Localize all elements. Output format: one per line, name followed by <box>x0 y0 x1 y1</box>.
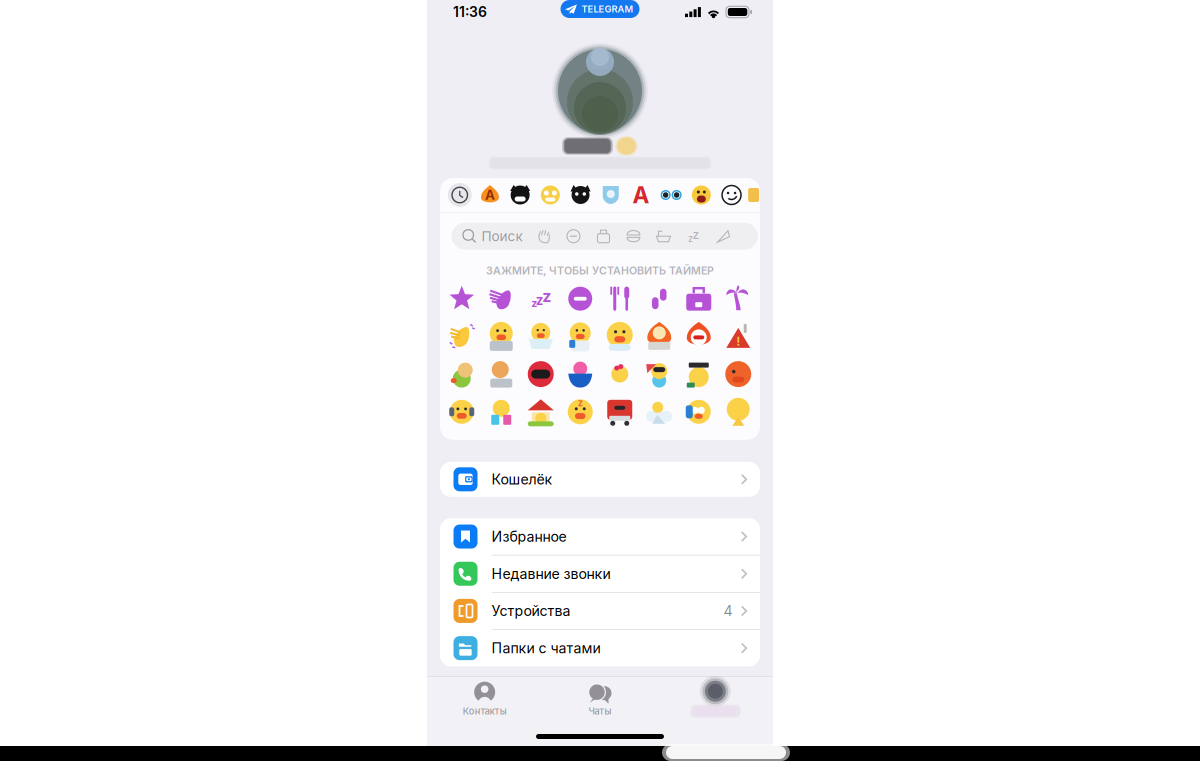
staticText: ! <box>736 334 740 349</box>
button[interactable]: Status emoji <box>481 321 521 351</box>
button[interactable]: Status emoji <box>521 321 560 351</box>
button[interactable]: Status emoji <box>560 321 600 351</box>
button[interactable]: Status emoji <box>442 321 481 351</box>
button[interactable]: Status emoji <box>521 359 560 389</box>
button[interactable]: Status emoji <box>600 284 639 314</box>
button[interactable]: Status emoji <box>442 284 481 314</box>
staticText: TELEGRAM <box>581 3 633 15</box>
staticText: Папки с чатами <box>491 640 600 657</box>
staticText: A <box>485 187 495 203</box>
button[interactable]: Recent <box>445 178 475 212</box>
button[interactable]: Status emoji <box>718 284 758 314</box>
button[interactable]: Status emoji <box>560 284 600 314</box>
staticText: Избранное <box>491 528 566 545</box>
staticText: z <box>692 227 699 242</box>
button[interactable]: Emoji set <box>565 178 596 212</box>
button[interactable]: Status emoji <box>639 284 679 314</box>
button[interactable]: Status emoji <box>600 359 639 389</box>
staticText: Устройства <box>491 602 570 619</box>
button[interactable]: Emoji set <box>686 178 716 212</box>
staticText: 4 <box>723 602 732 619</box>
staticText: Недавние звонки <box>491 565 610 582</box>
staticText: Кошелёк <box>491 471 552 488</box>
button[interactable]: Status emoji <box>442 397 481 427</box>
staticText: z <box>542 286 551 306</box>
button[interactable]: Emoji set <box>475 178 505 212</box>
button[interactable]: Emoji set <box>716 178 747 212</box>
button[interactable]: Контакты <box>427 676 542 721</box>
button[interactable]: Status emoji <box>560 397 600 427</box>
staticText: A <box>632 181 649 209</box>
button[interactable]: Emoji set <box>535 178 565 212</box>
button[interactable]: Status emoji <box>718 397 758 427</box>
button[interactable]: Status emoji <box>718 359 758 389</box>
button[interactable]: Папки с чатами <box>440 630 760 666</box>
button[interactable]: Status emoji <box>679 397 718 427</box>
button[interactable]: Избранное <box>440 518 760 555</box>
staticText: z <box>536 292 544 308</box>
button[interactable]: Status emoji <box>481 397 521 427</box>
button[interactable]: Status emoji <box>600 397 639 427</box>
staticText: Чаты <box>588 706 611 717</box>
staticText: ЗАЖМИТЕ, ЧТОБЫ УСТАНОВИТЬ ТАЙМЕР <box>486 264 714 277</box>
button[interactable]: Настройки <box>658 676 773 721</box>
button[interactable]: Emoji set <box>596 178 626 212</box>
button[interactable]: Status emoji <box>679 359 718 389</box>
button[interactable]: Status emoji <box>521 397 560 427</box>
button[interactable]: Status emoji <box>639 321 679 351</box>
button[interactable]: Status emoji <box>521 284 560 314</box>
button[interactable]: Telegram activity <box>560 0 639 18</box>
button[interactable]: Status emoji <box>600 321 639 351</box>
button[interactable]: Status emoji <box>679 284 718 314</box>
staticText: z <box>578 397 583 408</box>
button[interactable]: Status emoji <box>639 359 679 389</box>
staticText: z <box>531 297 537 310</box>
button[interactable]: Emoji set <box>626 178 656 212</box>
button[interactable]: Status emoji <box>481 284 521 314</box>
button[interactable]: Status emoji <box>442 359 481 389</box>
button[interactable]: Status emoji <box>481 359 521 389</box>
button[interactable]: Status emoji <box>560 359 600 389</box>
button[interactable]: Кошелёк <box>440 462 760 497</box>
button[interactable]: Status emoji <box>639 397 679 427</box>
button[interactable]: Устройства <box>440 593 760 629</box>
button[interactable]: Поиск <box>440 223 760 250</box>
staticText: Поиск <box>481 228 522 244</box>
button[interactable]: Status emoji <box>679 321 718 351</box>
button[interactable]: Недавние звонки <box>440 555 760 592</box>
staticText: Контакты <box>463 706 507 717</box>
button[interactable]: Чаты <box>542 676 658 721</box>
button[interactable]: Status emoji <box>718 321 758 351</box>
button[interactable]: Emoji set <box>656 178 686 212</box>
button[interactable]: Emoji set <box>505 178 535 212</box>
staticText: z <box>688 233 693 244</box>
staticText: 11:36 <box>453 3 487 20</box>
